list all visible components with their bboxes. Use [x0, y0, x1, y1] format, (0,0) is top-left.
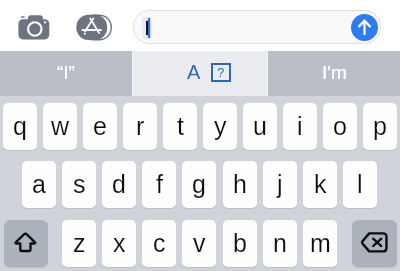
button[interactable]: f	[142, 161, 176, 208]
staticText: i	[297, 112, 303, 140]
staticText: f	[156, 170, 163, 198]
button[interactable]: l	[343, 161, 377, 208]
button[interactable]: w	[43, 103, 77, 150]
button[interactable]: Send	[351, 14, 378, 41]
staticText: x	[113, 229, 126, 257]
button[interactable]: I'm	[268, 51, 400, 96]
staticText: s	[73, 170, 86, 198]
staticText: e	[93, 112, 107, 140]
staticText: l	[357, 170, 363, 198]
staticText: n	[273, 229, 287, 257]
button[interactable]: “I”	[0, 51, 132, 96]
button[interactable]: b	[223, 220, 257, 267]
staticText: ?	[217, 65, 225, 80]
button[interactable]: e	[83, 103, 117, 150]
button[interactable]: u	[243, 103, 277, 150]
button[interactable]: m	[303, 220, 337, 267]
button[interactable]	[133, 10, 381, 44]
button[interactable]: o	[323, 103, 357, 150]
button[interactable]: c	[142, 220, 176, 267]
staticText: “I”	[57, 62, 75, 83]
staticText: a	[32, 170, 46, 198]
button[interactable]: x	[102, 220, 136, 267]
button[interactable]: i	[283, 103, 317, 150]
staticText: y	[214, 112, 227, 140]
button[interactable]: Take photo	[16, 12, 52, 41]
staticText: c	[153, 229, 166, 257]
button[interactable]: d	[102, 161, 136, 208]
staticText: j	[277, 170, 283, 198]
button[interactable]: p	[363, 103, 397, 150]
staticText: w	[51, 112, 70, 140]
staticText: k	[314, 170, 327, 198]
staticText: v	[193, 229, 206, 257]
button[interactable]: y	[203, 103, 237, 150]
button[interactable]: n	[263, 220, 297, 267]
staticText: I'm	[322, 62, 347, 83]
staticText: t	[177, 112, 184, 140]
button[interactable]: t	[163, 103, 197, 150]
staticText: b	[233, 229, 247, 257]
staticText: p	[373, 112, 387, 140]
button[interactable]: v	[182, 220, 216, 267]
button[interactable]: j	[263, 161, 297, 208]
staticText: q	[13, 112, 27, 140]
button[interactable]: Backspace	[352, 220, 397, 267]
button[interactable]: k	[303, 161, 337, 208]
button[interactable]: h	[223, 161, 257, 208]
staticText: z	[73, 229, 86, 257]
staticText: g	[192, 170, 206, 198]
staticText: d	[112, 170, 126, 198]
staticText: o	[333, 112, 347, 140]
button[interactable]: s	[62, 161, 96, 208]
staticText: h	[233, 170, 247, 198]
button[interactable]: g	[182, 161, 216, 208]
button[interactable]: Shift	[4, 220, 48, 267]
staticText: A	[187, 61, 201, 83]
button[interactable]: r	[123, 103, 157, 150]
button[interactable]: q	[3, 103, 37, 150]
staticText: m	[310, 229, 331, 257]
button[interactable]: a	[22, 161, 56, 208]
button[interactable]: App Store	[74, 12, 114, 44]
button[interactable]: z	[62, 220, 96, 267]
staticText: u	[253, 112, 267, 140]
button[interactable]: A	[133, 51, 267, 96]
staticText: r	[136, 112, 145, 140]
